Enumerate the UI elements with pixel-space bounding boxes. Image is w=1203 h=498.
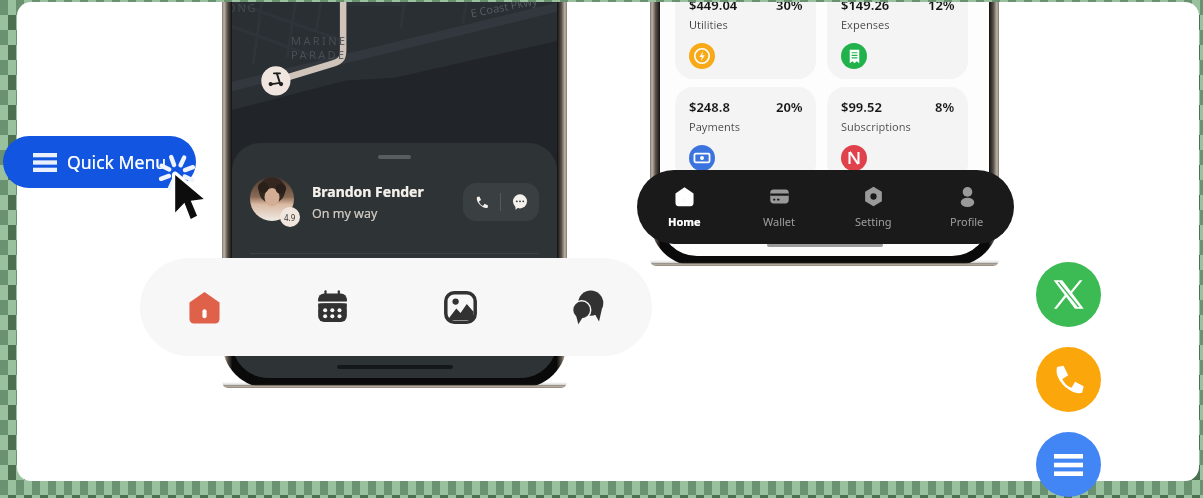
button[interactable]: Chats [524,258,652,356]
button[interactable]: Setting [826,170,920,244]
staticText: Brandon Fender [312,182,424,201]
staticText: Home [668,214,701,229]
staticText: 4.9 [284,212,296,223]
staticText: $449.04 [689,2,738,14]
button[interactable]: $449.04 [675,2,816,79]
button[interactable]: $149.26 [827,2,968,79]
staticText: Profile [950,214,984,229]
staticText: MARINE [291,33,348,48]
staticText: Subscriptions [841,119,911,134]
staticText: Setting [855,214,892,229]
staticText: Payments [689,119,740,134]
staticText: Expenses [841,17,890,32]
staticText: $248.8 [689,98,730,116]
staticText: 12% [928,2,955,14]
button[interactable]: Share on X [1036,262,1101,327]
staticText: $99.52 [841,98,882,116]
staticText: On my way [312,205,378,222]
button[interactable]: Wallet [732,170,826,244]
staticText: 20% [776,98,803,116]
button[interactable]: $99.52 [827,87,968,181]
staticText: Quick Menu [67,150,167,174]
staticText: Utilities [689,17,728,32]
staticText: 8% [935,98,955,116]
staticText: $149.26 [841,2,890,14]
button[interactable]: $248.8 [675,87,816,181]
button[interactable]: Profile [920,170,1014,244]
button[interactable]: Home [637,170,732,244]
button[interactable]: Quick Menu [3,136,196,188]
button[interactable]: Call [1036,347,1101,412]
button[interactable]: Menu [1036,432,1101,497]
staticText: PARADE [291,47,347,62]
button[interactable]: Calendar [268,258,396,356]
button[interactable]: Home [140,258,268,356]
button[interactable]: Photos [396,258,524,356]
staticText: ONG [232,2,258,15]
staticText: Wallet [763,214,796,229]
staticText: Honda Activa HT 48 L [250,274,390,292]
button[interactable]: Call and message [463,183,539,221]
staticText: 30% [776,2,803,14]
staticText: E Coast Pkwy [469,2,539,20]
